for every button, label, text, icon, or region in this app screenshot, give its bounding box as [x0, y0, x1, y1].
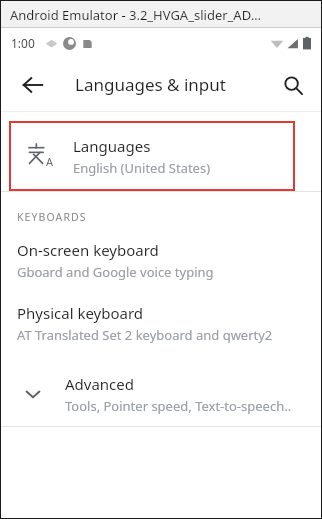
staticText: Advanced: [65, 374, 135, 394]
staticText: Physical keyboard: [17, 303, 144, 323]
staticText: KEYBOARDS: [17, 210, 87, 224]
staticText: 1:00: [11, 35, 35, 51]
button[interactable]: Search: [273, 65, 313, 105]
staticText: Languages & input: [75, 73, 226, 96]
staticText: Languages: [73, 136, 151, 156]
staticText: English (United States): [73, 159, 211, 177]
button[interactable]: Back: [13, 65, 53, 105]
button[interactable]: A: [9, 121, 295, 191]
button[interactable]: Physical keyboard: [1, 303, 321, 344]
staticText: On-screen keyboard: [17, 240, 159, 260]
staticText: Tools, Pointer speed, Text-to-speech..: [65, 397, 292, 415]
button[interactable]: On-screen keyboard: [1, 240, 321, 281]
staticText: AT Translated Set 2 keyboard and qwerty2: [17, 326, 273, 344]
button[interactable]: Advanced: [1, 368, 321, 420]
staticText: Gboard and Google voice typing: [17, 263, 214, 281]
staticText: A: [46, 154, 54, 169]
staticText: Android Emulator - 3.2_HVGA_slider_AD…: [10, 6, 261, 24]
